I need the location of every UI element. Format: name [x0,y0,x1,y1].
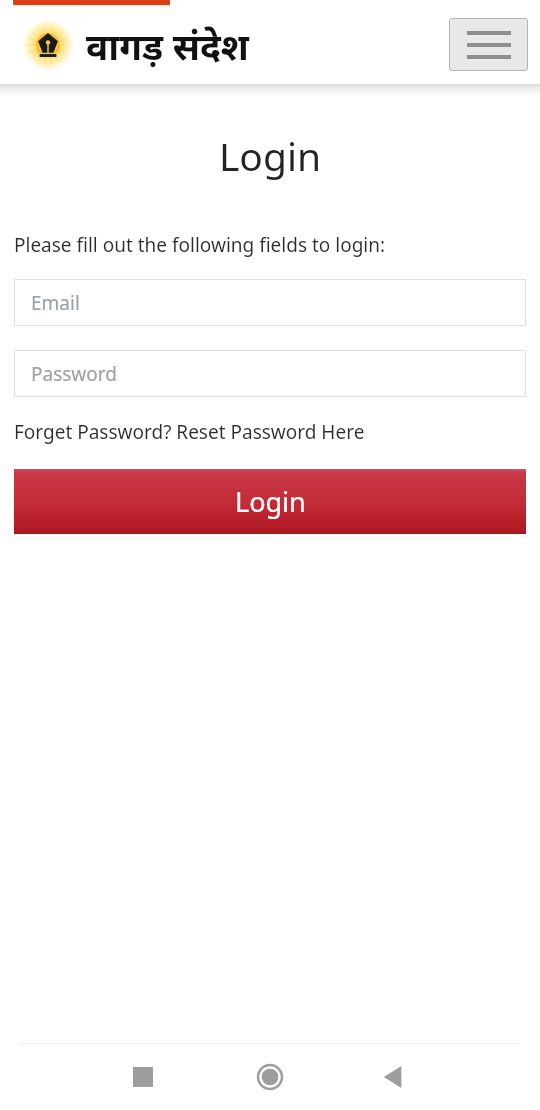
button[interactable]: Back [369,1053,417,1101]
button[interactable]: Email [14,279,526,326]
button[interactable]: Home [246,1053,294,1101]
staticText: वागड़ संदेश [86,20,249,70]
staticText: Please fill out the following fields to … [14,232,386,258]
button[interactable]: Login [14,469,526,534]
button[interactable]: Password [14,350,526,397]
staticText: Password [31,361,117,387]
button[interactable]: Open menu [449,18,528,71]
staticText: Login [235,483,306,520]
button[interactable]: Recent apps [119,1053,167,1101]
staticText: Email [31,290,80,316]
staticText: Login [0,129,540,182]
button[interactable]: Forget Password? Reset Password Here [14,419,365,445]
